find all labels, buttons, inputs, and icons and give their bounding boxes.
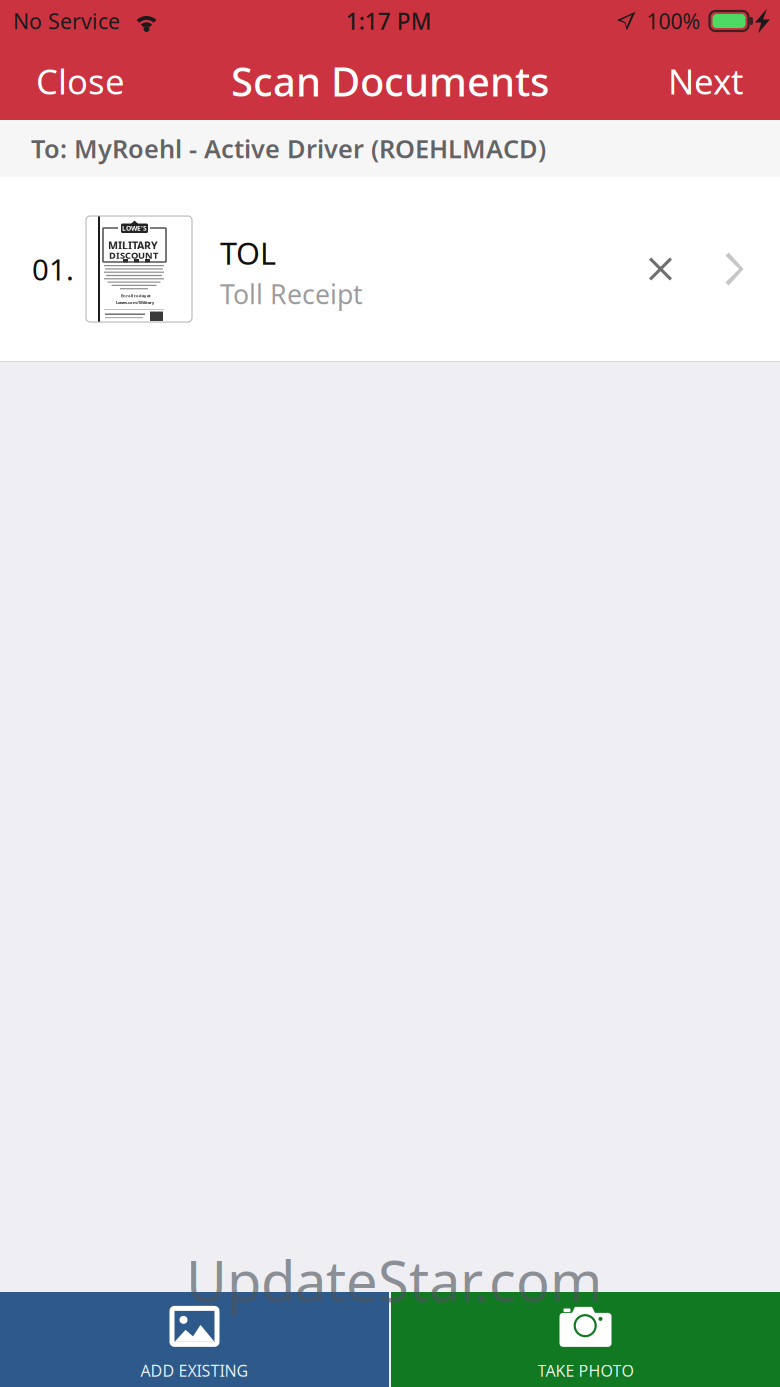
button[interactable]: Close bbox=[18, 44, 143, 118]
staticText: DISCOUNT bbox=[109, 249, 158, 261]
staticText: 1:17 PM bbox=[346, 6, 432, 36]
staticText: No Service bbox=[13, 7, 120, 35]
button[interactable]: ADD EXISTING bbox=[0, 1292, 389, 1387]
staticText: MILITARY bbox=[108, 238, 158, 252]
staticText: 01. bbox=[32, 249, 74, 288]
staticText: To: MyRoehl - Active Driver (ROEHLMACD) bbox=[31, 132, 546, 165]
staticText: UpdateStar.com bbox=[186, 1243, 602, 1317]
staticText: Scan Documents bbox=[231, 54, 549, 107]
staticText: ADD EXISTING bbox=[140, 1360, 248, 1381]
button[interactable]: Open document bbox=[689, 177, 780, 361]
button[interactable]: Remove document bbox=[632, 177, 689, 361]
staticText: Next bbox=[668, 58, 744, 104]
staticText: Lowes.com/Military bbox=[116, 300, 154, 305]
staticText: TOL bbox=[220, 232, 276, 273]
staticText: Enroll today at bbox=[121, 293, 151, 298]
staticText: LOWE'S bbox=[122, 224, 147, 233]
staticText: Close bbox=[36, 58, 125, 104]
button[interactable]: TAKE PHOTO bbox=[391, 1292, 780, 1387]
button[interactable]: 01. bbox=[0, 177, 632, 361]
staticText: Toll Receipt bbox=[220, 276, 363, 312]
staticText: 100% bbox=[646, 7, 700, 35]
button[interactable]: Next bbox=[650, 44, 762, 118]
staticText: TAKE PHOTO bbox=[537, 1360, 633, 1381]
